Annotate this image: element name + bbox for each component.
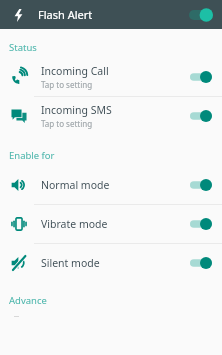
staticText: Status [9,41,37,54]
button[interactable]: Master toggle [186,4,216,26]
button[interactable]: Silent mode switch [186,251,216,275]
button[interactable]: Normal mode switch [186,173,216,197]
button[interactable]: Silent mode [0,244,222,282]
staticText: Silent mode [41,256,100,270]
button[interactable]: Incoming Call switch [186,65,216,89]
button[interactable]: Incoming SMS switch [186,104,216,128]
staticText: Normal mode [41,178,110,192]
button[interactable]: Vibrate mode switch [186,212,216,236]
staticText: Advance [9,294,47,307]
button[interactable]: Flash [8,5,28,25]
staticText: Incoming SMS [41,103,112,117]
staticText: Vibrate mode [41,217,108,231]
button[interactable]: Vibrate mode [0,205,222,243]
staticText: Tap to setting [41,118,93,129]
staticText: Enable for [9,149,55,162]
button[interactable]: Incoming SMS [0,97,222,135]
staticText: Flash Alert [38,7,93,22]
staticText: Tap to setting [41,79,93,90]
button[interactable]: Incoming Call [0,58,222,96]
button[interactable]: Normal mode [0,166,222,204]
staticText: Incoming Call [41,64,109,78]
